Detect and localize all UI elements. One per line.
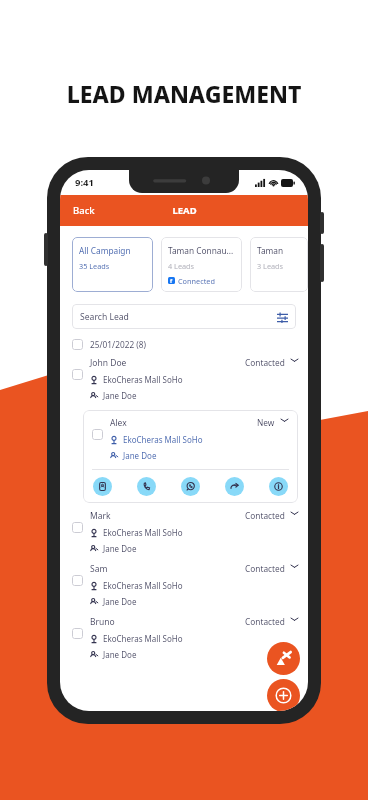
button[interactable]: Select [72,339,83,350]
staticText: Back [73,204,95,217]
staticText: Taman Connau... [257,245,301,256]
staticText: John Doe [90,357,127,369]
staticText: Sam [90,563,108,575]
staticText: All Campaign [79,245,131,256]
button[interactable]: Select [72,628,83,639]
staticText: EkoCheras Mall SoHo [103,374,183,385]
staticText: Search Lead [80,311,129,323]
button[interactable]: Select [60,503,308,556]
button[interactable]: Forward [225,477,244,496]
button[interactable]: Select [83,410,298,463]
button[interactable]: Select [72,575,83,586]
button[interactable]: WhatsApp [181,477,200,496]
button[interactable]: Back [60,198,108,223]
staticText: f [170,277,173,284]
button[interactable]: Select [72,522,83,533]
button[interactable]: Call [137,477,156,496]
button[interactable]: Select [60,350,308,403]
staticText: Contacted [245,616,285,627]
staticText: EkoCheras Mall SoHo [103,633,183,644]
button[interactable]: Select [72,369,83,380]
staticText: Taman Connau... [168,245,234,256]
button[interactable]: Filter [276,311,288,323]
button[interactable]: Auction [267,642,300,675]
button[interactable]: Add lead [267,679,300,711]
button[interactable]: Taman Connau... [250,237,308,292]
staticText: Jane Doe [103,390,137,401]
staticText: Jane Doe [123,450,157,461]
staticText: Jane Doe [103,596,137,607]
staticText: Contacted [245,510,285,521]
staticText: EkoCheras Mall SoHo [103,580,183,591]
staticText: Bruno [90,616,115,628]
button[interactable]: Search Lead [72,304,296,329]
staticText: 3 Leads [257,261,284,271]
button[interactable]: Select [92,429,103,440]
button[interactable]: Contact card [93,477,112,496]
staticText: EkoCheras Mall SoHo [103,527,183,538]
staticText: LEAD MANAGEMENT [0,78,368,109]
staticText: Contacted [245,357,285,368]
staticText: Alex [110,417,127,429]
staticText: 35 Leads [79,261,110,271]
button[interactable]: Taman Connau... [161,237,242,292]
staticText: 4 Leads [168,261,195,271]
staticText: Jane Doe [103,543,137,554]
staticText: Mark [90,510,111,522]
staticText: Contacted [245,563,285,574]
button[interactable]: Select [72,339,308,350]
staticText: LEAD [172,204,197,217]
staticText: Connected [178,276,215,284]
button[interactable]: Select [60,609,308,662]
staticText: 9:41 [75,176,94,189]
staticText: EkoCheras Mall SoHo [123,434,203,445]
staticText: New [257,417,275,428]
button[interactable]: Info [269,477,288,496]
staticText: Jane Doe [103,649,137,660]
button[interactable]: Select [60,556,308,609]
button[interactable]: All Campaign [72,237,153,292]
staticText: 25/01/2022 (8) [90,339,147,350]
